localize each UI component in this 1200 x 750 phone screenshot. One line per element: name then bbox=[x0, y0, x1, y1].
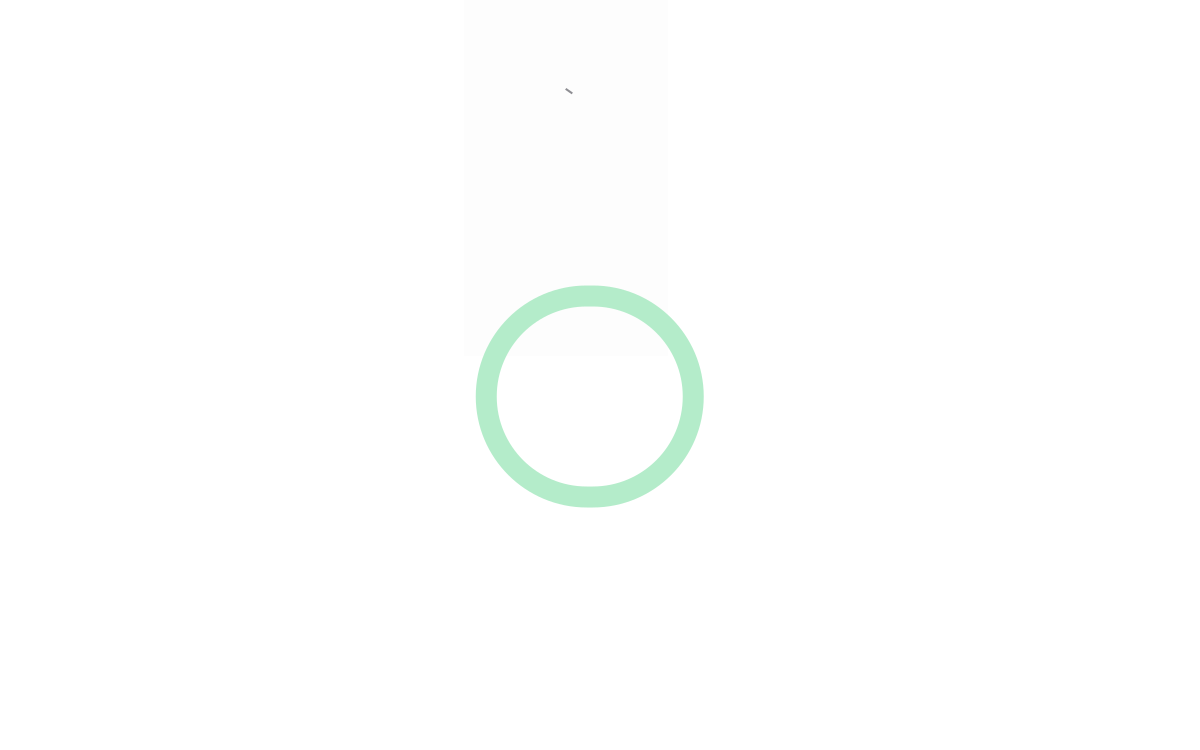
button[interactable]: Progress ring bbox=[486, 296, 693, 497]
